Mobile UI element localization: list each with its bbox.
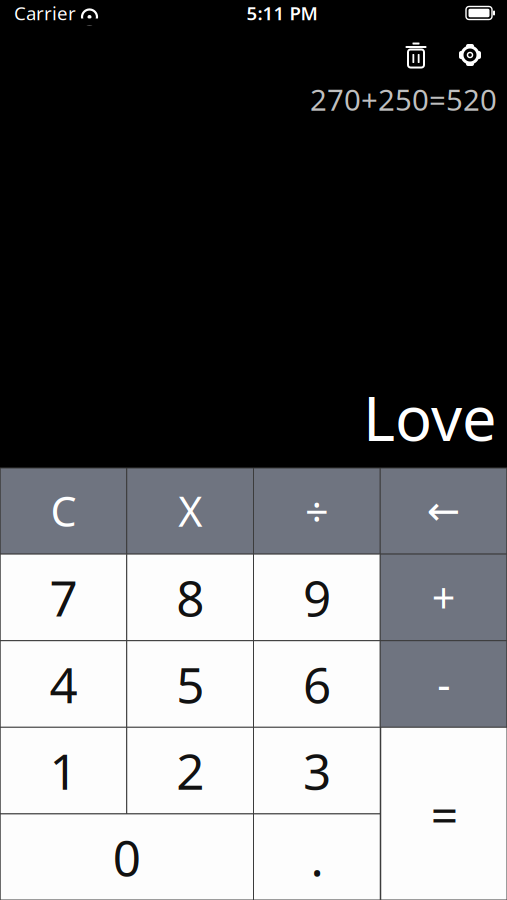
button[interactable]: + xyxy=(381,555,507,640)
staticText: 1 xyxy=(49,738,77,803)
button[interactable]: 4 xyxy=(0,641,126,727)
staticText: . xyxy=(310,824,323,890)
staticText: - xyxy=(437,657,450,711)
button[interactable]: Settings xyxy=(443,32,497,78)
staticText: 6 xyxy=(303,651,331,717)
button[interactable]: C xyxy=(0,468,126,554)
staticText: C xyxy=(50,483,76,538)
button[interactable]: X xyxy=(127,468,253,554)
staticText: Love xyxy=(363,377,497,458)
staticText: 9 xyxy=(303,565,331,630)
button[interactable]: 5 xyxy=(127,641,253,727)
button[interactable]: 1 xyxy=(0,728,126,813)
staticText: 5 xyxy=(176,651,204,717)
button[interactable]: 0 xyxy=(0,814,253,900)
staticText: Carrier xyxy=(14,1,76,25)
staticText: 8 xyxy=(176,565,204,630)
button[interactable]: ÷ xyxy=(254,468,380,554)
staticText: 4 xyxy=(49,651,77,717)
button[interactable]: 2 xyxy=(127,728,253,813)
staticText: ← xyxy=(427,488,461,533)
button[interactable]: 7 xyxy=(0,555,126,640)
button[interactable]: . xyxy=(254,814,380,900)
button[interactable]: - xyxy=(381,641,507,727)
button[interactable]: 3 xyxy=(254,728,380,813)
button[interactable]: Backspace xyxy=(381,468,507,554)
staticText: 3 xyxy=(303,738,331,803)
button[interactable]: 8 xyxy=(127,555,253,640)
button[interactable]: 9 xyxy=(254,555,380,640)
staticText: ÷ xyxy=(305,483,329,538)
staticText: 5:11 PM xyxy=(246,1,317,25)
staticText: = xyxy=(431,782,458,846)
staticText: 0 xyxy=(113,824,141,890)
staticText: + xyxy=(432,570,456,625)
button[interactable]: Clear history xyxy=(389,32,443,78)
staticText: X xyxy=(178,483,202,538)
button[interactable]: = xyxy=(381,728,507,900)
staticText: 7 xyxy=(49,565,77,630)
button[interactable]: 6 xyxy=(254,641,380,727)
staticText: 270+250=520 xyxy=(310,80,497,119)
staticText: 2 xyxy=(176,738,204,803)
